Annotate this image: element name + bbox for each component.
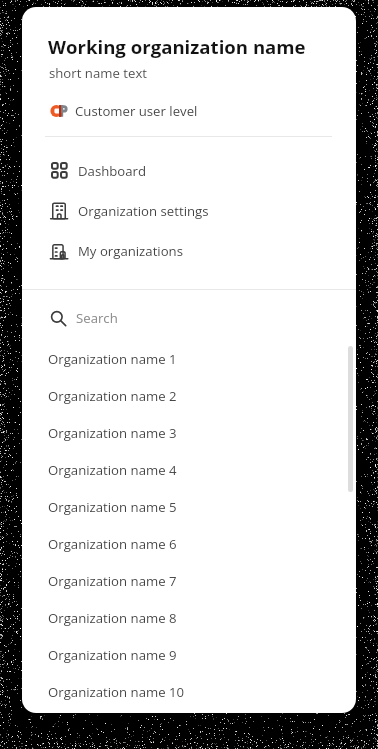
- staticText: Customer user level: [75, 102, 198, 120]
- button[interactable]: Organization name 4: [22, 451, 356, 488]
- button[interactable]: Search: [22, 295, 356, 341]
- button[interactable]: Organization name 10: [22, 673, 356, 710]
- other: Search: [51, 311, 66, 326]
- staticText: Organization settings: [78, 202, 209, 220]
- button[interactable]: Dashboard: [22, 156, 356, 186]
- staticText: Organization name 10: [48, 683, 185, 701]
- button[interactable]: Organization name 1: [22, 340, 356, 377]
- staticText: Dashboard: [78, 162, 147, 180]
- button[interactable]: Organization name 2: [22, 377, 356, 414]
- button[interactable]: Organization name 9: [22, 636, 356, 673]
- button[interactable]: Organization name 6: [22, 525, 356, 562]
- button[interactable]: Organization name 3: [22, 414, 356, 451]
- button[interactable]: Organization name 8: [22, 599, 356, 636]
- staticText: Organization name 7: [48, 572, 177, 590]
- staticText: Working organization name: [48, 34, 306, 59]
- staticText: Organization name 5: [48, 498, 177, 516]
- staticText: Organization name 1: [48, 350, 177, 368]
- button[interactable]: My organizations: [22, 236, 356, 266]
- staticText: Organization name 4: [48, 461, 177, 479]
- staticText: Organization name 9: [48, 646, 177, 664]
- staticText: Organization name 8: [48, 609, 177, 627]
- staticText: Organization name 6: [48, 535, 177, 553]
- button[interactable]: Organization name 7: [22, 562, 356, 599]
- staticText: short name text: [49, 64, 147, 82]
- staticText: Search: [76, 309, 118, 327]
- button[interactable]: Organization name 5: [22, 488, 356, 525]
- staticText: My organizations: [78, 242, 183, 260]
- staticText: Organization name 2: [48, 387, 177, 405]
- staticText: Organization name 3: [48, 424, 177, 442]
- button[interactable]: Customer level logo: [22, 99, 356, 123]
- other: Customer level logo: [51, 105, 68, 117]
- button[interactable]: Organization settings: [22, 196, 356, 226]
